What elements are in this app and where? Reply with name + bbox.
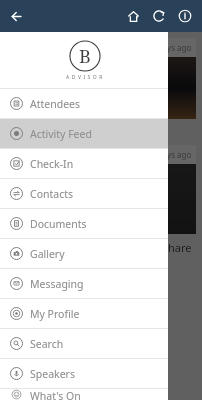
staticText: 2 days ago xyxy=(151,42,192,53)
staticText: Share xyxy=(162,240,192,255)
button[interactable]: Search xyxy=(0,329,168,358)
staticText: My Profile xyxy=(30,307,80,321)
button[interactable]: Back xyxy=(3,3,29,29)
button[interactable]: Speakers xyxy=(0,359,168,388)
button[interactable]: Contacts xyxy=(0,179,168,208)
staticText: A D V I S O R xyxy=(66,74,103,81)
button[interactable]: Messaging xyxy=(0,269,168,298)
staticText: Gallery xyxy=(30,247,65,261)
staticText: Contacts xyxy=(30,187,74,201)
staticText: Documents xyxy=(30,217,87,231)
button[interactable]: Home xyxy=(120,3,146,29)
button[interactable]: Check-In xyxy=(0,149,168,178)
staticText: Join us at the main hall for check-in xyxy=(8,127,156,139)
staticText: Attendees xyxy=(30,97,81,111)
staticText: Messaging xyxy=(30,277,84,291)
button[interactable]: Gallery xyxy=(0,239,168,268)
staticText: Speakers xyxy=(30,367,75,381)
staticText: B xyxy=(79,44,91,69)
button[interactable]: Documents xyxy=(0,209,168,238)
button[interactable]: My Profile xyxy=(0,299,168,328)
staticText: Check-In xyxy=(30,157,74,171)
staticText: What's On xyxy=(30,389,81,400)
button[interactable]: Activity Feed xyxy=(0,119,168,148)
staticText: Search xyxy=(30,337,64,351)
staticText: Activity Feed xyxy=(30,127,92,141)
button[interactable]: Attendees xyxy=(0,89,168,118)
staticText: 2 days ago xyxy=(151,149,192,160)
button[interactable]: What's On xyxy=(0,389,168,400)
button[interactable]: Refresh xyxy=(146,3,172,29)
button[interactable]: Information xyxy=(172,3,198,29)
